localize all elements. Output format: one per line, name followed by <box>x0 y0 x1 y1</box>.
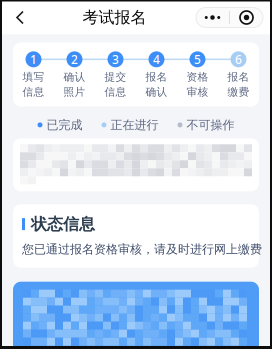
staticText: 正在进行 <box>110 117 158 132</box>
staticText: 3 <box>112 51 119 67</box>
button[interactable] <box>13 282 259 349</box>
staticText: 不可操作 <box>186 117 234 132</box>
staticText: 资格 <box>186 70 208 83</box>
staticText: 您已通过报名资格审核，请及时进行网上缴费 <box>22 242 262 257</box>
staticText: 状态信息 <box>31 214 95 234</box>
button[interactable]: Back <box>7 0 33 34</box>
staticText: 5 <box>194 51 201 67</box>
staticText: 4 <box>153 51 160 67</box>
staticText: 照片 <box>63 85 85 98</box>
staticText: 填写 <box>22 70 44 83</box>
staticText: 报名 <box>145 70 167 83</box>
button[interactable]: Close <box>230 7 263 27</box>
staticText: 已完成 <box>46 117 82 132</box>
staticText: 2 <box>71 51 78 67</box>
staticText: 报名 <box>227 70 249 83</box>
staticText: 缴费 <box>227 85 249 98</box>
staticText: 1 <box>30 51 37 67</box>
staticText: 6 <box>235 51 242 67</box>
staticText: 考试报名 <box>82 8 146 27</box>
staticText: 确认 <box>145 85 167 98</box>
staticText: 确认 <box>63 70 85 83</box>
staticText: 提交 <box>104 70 126 83</box>
staticText: 信息 <box>104 85 126 98</box>
button[interactable]: More <box>196 7 229 27</box>
staticText: 审核 <box>186 85 208 98</box>
staticText: 信息 <box>22 85 44 98</box>
